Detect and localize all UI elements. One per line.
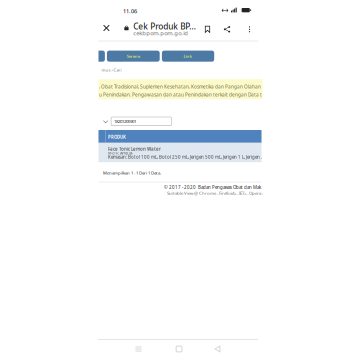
button[interactable]: Recent apps bbox=[128, 341, 148, 357]
staticText: cekbpom.pom.go.id bbox=[133, 29, 188, 37]
staticText: Sarana bbox=[127, 53, 140, 59]
button[interactable]: Close bbox=[98, 20, 115, 37]
staticText: Face Tonic Lemon Water bbox=[108, 146, 161, 152]
staticText: , Obat Tradisional, Suplemen Kesehatan, … bbox=[99, 83, 261, 90]
staticText: Link bbox=[184, 53, 193, 59]
button[interactable]: Link bbox=[162, 51, 214, 62]
staticText: 18201205901 bbox=[114, 118, 136, 124]
staticText: Suitable View @ Chrome - Firefox4+ - IE7… bbox=[167, 190, 263, 196]
staticText: Merk: APRILIA bbox=[108, 150, 132, 156]
staticText: 11.06 bbox=[123, 7, 137, 15]
button[interactable]: Home bbox=[169, 341, 189, 357]
staticText: Menampilkan 1 - 1 Dari 1 Data. bbox=[103, 170, 161, 176]
button[interactable]: Share bbox=[219, 22, 234, 37]
staticText: mus › Cari bbox=[102, 67, 122, 73]
staticText: Cek Produk BP… bbox=[133, 21, 196, 32]
button[interactable]: Back bbox=[207, 341, 227, 357]
staticText: Kemasan: Botol 100 mL, Botol 250 mL, Jer… bbox=[108, 154, 264, 160]
button[interactable]: Bookmark bbox=[200, 22, 215, 37]
button[interactable]: Menu bbox=[98, 51, 105, 62]
button[interactable]: More options bbox=[244, 22, 255, 37]
staticText: © 2017 - 2020 Badan Pengawas Obat dan Ma… bbox=[164, 184, 261, 190]
staticText: u Penindakan. Pengawasan dan atau Penind… bbox=[99, 91, 262, 98]
staticText: PRODUK bbox=[108, 134, 126, 140]
button[interactable]: Sarana bbox=[107, 51, 160, 62]
